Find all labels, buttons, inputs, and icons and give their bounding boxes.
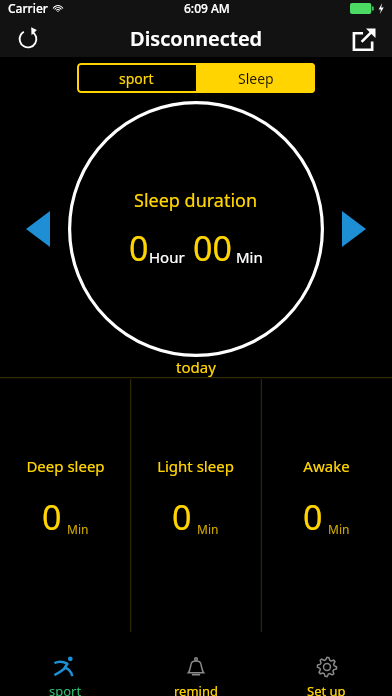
button[interactable]: remind (130, 640, 261, 696)
staticText: Min (67, 521, 89, 537)
staticText: 0 (129, 225, 149, 271)
staticText: Set up (307, 682, 346, 696)
staticText: sport (49, 682, 82, 696)
staticText: Deep sleep (26, 456, 105, 476)
button[interactable]: Awake (261, 377, 392, 633)
button[interactable]: Previous day (16, 207, 60, 251)
staticText: Min (197, 521, 219, 537)
staticText: today (176, 357, 216, 377)
staticText: 6:09 AM (184, 0, 230, 16)
button[interactable]: Sleep (196, 63, 315, 93)
button[interactable]: Deep sleep (0, 377, 130, 633)
staticText: Hour (149, 247, 185, 267)
staticText: 0 (172, 494, 192, 540)
staticText: Light sleep (157, 456, 234, 476)
staticText: Min (236, 247, 263, 267)
staticText: Sleep duration (134, 188, 258, 213)
staticText: 0 (42, 494, 62, 540)
button[interactable]: sport (0, 640, 130, 696)
button[interactable]: sport (77, 63, 196, 93)
staticText: 0 (303, 494, 323, 540)
button[interactable]: Share (346, 21, 382, 57)
staticText: Min (328, 521, 350, 537)
button[interactable]: Refresh (10, 21, 46, 57)
button[interactable]: Light sleep (130, 377, 261, 633)
staticText: Sleep (238, 69, 274, 88)
staticText: Carrier (8, 0, 48, 16)
button[interactable]: Set up (261, 640, 392, 696)
button[interactable]: Next day (332, 207, 376, 251)
staticText: Awake (303, 456, 350, 476)
staticText: sport (119, 69, 154, 88)
staticText: Disconnected (130, 25, 263, 52)
staticText: remind (174, 682, 218, 696)
staticText: 00 (193, 225, 232, 271)
